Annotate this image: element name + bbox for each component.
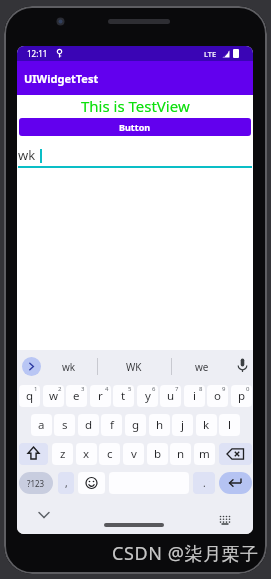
staticText: . (203, 476, 206, 490)
staticText: 1 (34, 385, 38, 393)
button[interactable]: v (123, 443, 144, 465)
staticText: LTE (204, 49, 217, 59)
button[interactable]: p (231, 385, 252, 407)
button[interactable]: f (101, 414, 122, 436)
button[interactable]: . (193, 472, 215, 494)
staticText: h (156, 417, 164, 433)
button[interactable]: WK (97, 357, 170, 376)
staticText: u (167, 388, 175, 404)
staticText: 5 (128, 385, 132, 393)
staticText: o (214, 388, 221, 404)
staticText: wk (18, 146, 36, 164)
staticText: WK (126, 360, 142, 374)
staticText: m (199, 446, 210, 462)
button[interactable] (236, 358, 249, 374)
staticText: 9 (222, 385, 226, 393)
staticText: p (238, 388, 246, 404)
button[interactable] (78, 472, 105, 494)
button[interactable]: w (43, 385, 64, 407)
staticText: k (203, 417, 210, 433)
button[interactable]: j (172, 414, 193, 436)
staticText: This is TestView (81, 96, 190, 116)
button[interactable]: i (184, 385, 205, 407)
button[interactable]: z (52, 443, 73, 465)
staticText: ?123 (27, 478, 45, 489)
button[interactable]: m (194, 443, 215, 465)
button[interactable] (219, 472, 252, 494)
staticText: v (131, 446, 137, 462)
staticText: l (228, 417, 231, 433)
staticText: e (73, 388, 80, 404)
staticText: 0 (246, 385, 250, 393)
button[interactable]: b (147, 443, 168, 465)
button[interactable]: u (160, 385, 181, 407)
button[interactable]: k (196, 414, 217, 436)
staticText: i (193, 388, 196, 404)
staticText: , (65, 476, 68, 490)
staticText: a (38, 417, 45, 433)
staticText: j (181, 417, 184, 433)
button[interactable]: n (170, 443, 191, 465)
button[interactable] (22, 357, 41, 376)
button[interactable]: h (149, 414, 170, 436)
staticText: x (83, 446, 90, 462)
staticText: 2 (58, 385, 62, 393)
staticText: f (110, 417, 114, 433)
button[interactable]: we (171, 357, 233, 376)
staticText: 7 (175, 385, 179, 393)
staticText: y (145, 388, 151, 404)
button[interactable]: e (66, 385, 87, 407)
staticText: g (132, 417, 140, 433)
button[interactable]: d (78, 414, 99, 436)
button[interactable]: o (207, 385, 228, 407)
staticText: s (62, 417, 68, 433)
button[interactable]: Button (19, 118, 251, 136)
button[interactable]: l (219, 414, 240, 436)
button[interactable]: t (113, 385, 134, 407)
button[interactable]: c (99, 443, 120, 465)
button[interactable]: wk (41, 357, 96, 376)
staticText: t (121, 388, 126, 404)
staticText: 4 (105, 385, 109, 393)
staticText: 8 (199, 385, 203, 393)
button[interactable]: s (54, 414, 75, 436)
staticText: CSDN @柒月栗子 (112, 541, 259, 566)
staticText: n (177, 446, 185, 462)
button[interactable] (38, 511, 50, 519)
staticText: 6 (152, 385, 156, 393)
button[interactable] (17, 142, 253, 169)
button[interactable]: a (31, 414, 52, 436)
staticText: UIWidgetTest (24, 71, 99, 86)
button[interactable]: g (125, 414, 146, 436)
staticText: we (195, 360, 209, 374)
staticText: 12:11 (27, 48, 48, 59)
staticText: z (60, 446, 66, 462)
staticText: r (98, 388, 103, 404)
button[interactable] (219, 443, 252, 465)
button[interactable]: , (58, 472, 74, 494)
staticText: w (49, 388, 59, 404)
staticText: b (154, 446, 162, 462)
staticText: wk (62, 360, 76, 374)
staticText: q (26, 388, 34, 404)
staticText: c (107, 446, 113, 462)
staticText: Button (119, 121, 151, 133)
button[interactable] (219, 515, 231, 525)
button[interactable]: y (137, 385, 158, 407)
button[interactable]: q (19, 385, 40, 407)
button[interactable]: x (76, 443, 97, 465)
staticText: d (85, 417, 93, 433)
staticText: 3 (81, 385, 85, 393)
button[interactable]: r (90, 385, 111, 407)
button[interactable] (19, 443, 48, 465)
button[interactable]: ?123 (19, 472, 53, 494)
